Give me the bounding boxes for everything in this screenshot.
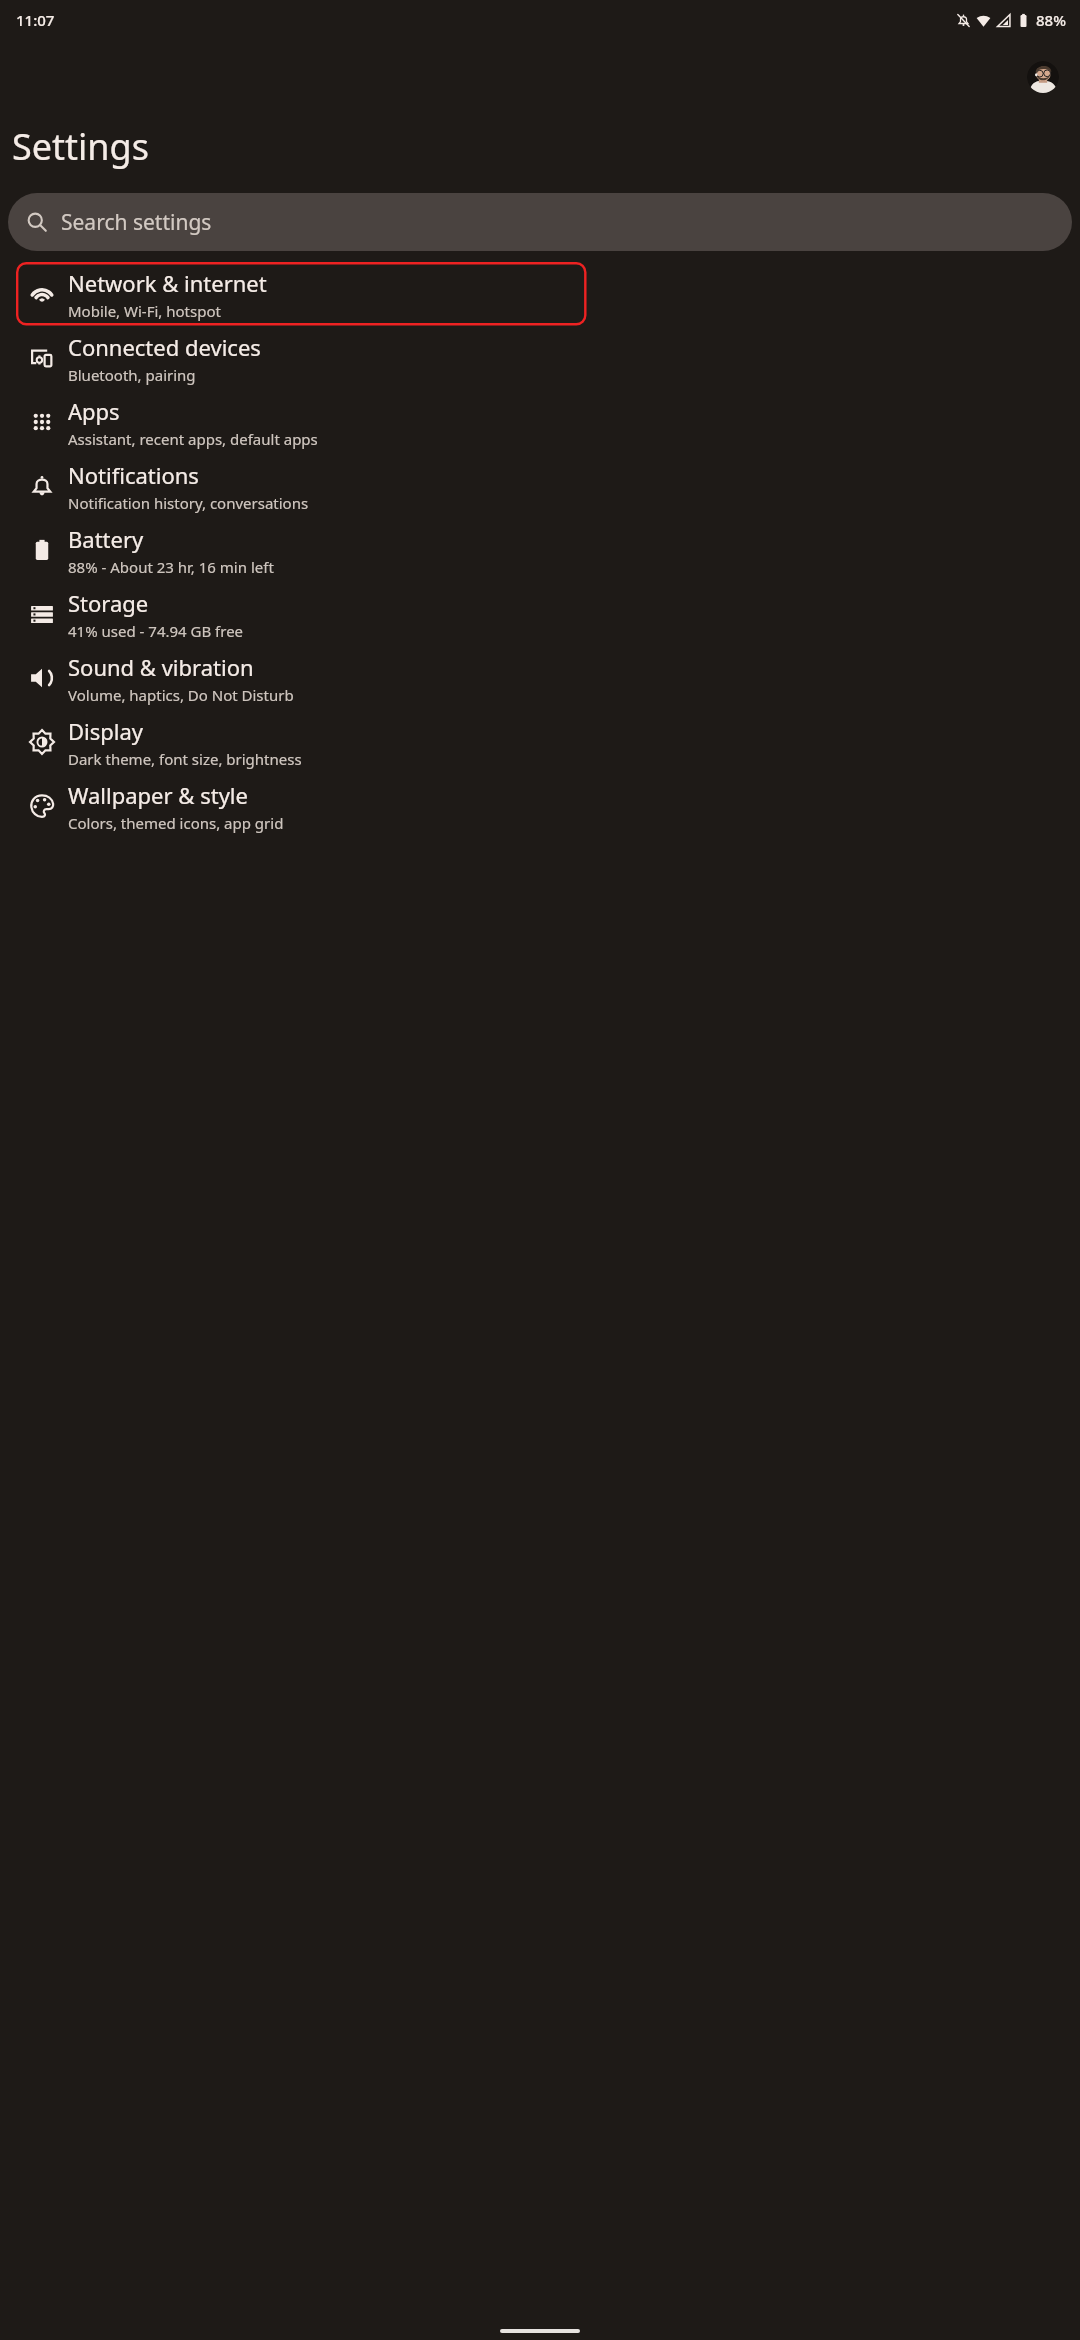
staticText: Notification history, conversations (68, 493, 309, 513)
staticText: Search settings (61, 208, 212, 237)
staticText: Connected devices (68, 332, 261, 362)
staticText: Dark theme, font size, brightness (68, 749, 302, 769)
staticText: Assistant, recent apps, default apps (68, 429, 318, 449)
staticText: Sound & vibration (68, 652, 254, 682)
staticText: Notifications (68, 460, 199, 490)
staticText: 41% used - 74.94 GB free (68, 621, 244, 641)
staticText: Display (68, 716, 144, 746)
staticText: Storage (68, 588, 149, 618)
button[interactable]: Notifications (0, 454, 1080, 518)
button[interactable]: Account avatar (1027, 61, 1059, 93)
staticText: Bluetooth, pairing (68, 365, 196, 385)
staticText: Network & internet (68, 268, 267, 298)
staticText: 88% (1036, 10, 1066, 30)
button[interactable]: Wallpaper & style (0, 774, 1080, 838)
button[interactable]: Network & internet (16, 262, 587, 326)
button[interactable]: Apps (0, 390, 1080, 454)
staticText: Settings (12, 122, 149, 171)
staticText: 88% - About 23 hr, 16 min left (68, 557, 274, 577)
staticText: Battery (68, 524, 144, 554)
staticText: 11:07 (16, 10, 55, 30)
button[interactable]: Display (0, 710, 1080, 774)
button[interactable]: Sound & vibration (0, 646, 1080, 710)
button[interactable]: Battery (0, 518, 1080, 582)
staticText: Colors, themed icons, app grid (68, 813, 284, 833)
button[interactable]: Storage (0, 582, 1080, 646)
staticText: Volume, haptics, Do Not Disturb (68, 685, 294, 705)
button[interactable]: Search settings (8, 193, 1072, 251)
staticText: Mobile, Wi-Fi, hotspot (68, 301, 221, 321)
staticText: Wallpaper & style (68, 780, 248, 810)
button[interactable]: Connected devices (0, 326, 1080, 390)
staticText: Apps (68, 396, 120, 426)
